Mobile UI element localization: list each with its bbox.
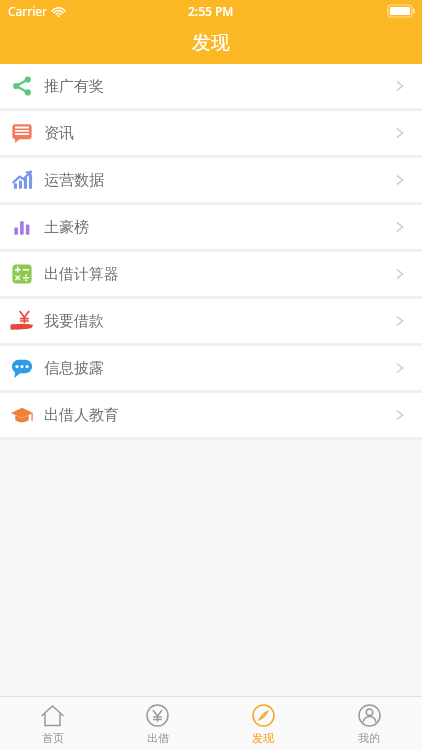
staticText: 发现 [192,31,230,55]
staticText: 出借计算器 [44,265,119,284]
button[interactable]: 出借人教育 [0,393,422,437]
staticText: 土豪榜 [44,218,89,237]
staticText: 首页 [42,731,64,745]
button[interactable]: 推广有奖 [0,64,422,108]
button[interactable]: 出借 [105,697,210,750]
button[interactable]: 运营数据 [0,158,422,202]
staticText: 推广有奖 [44,77,104,96]
staticText: 发现 [252,731,274,745]
button[interactable]: 我要借款 [0,299,422,343]
staticText: 我的 [358,731,380,745]
staticText: 资讯 [44,124,74,143]
staticText: 我要借款 [44,312,104,331]
staticText: 2:55 PM [188,3,234,19]
staticText: 信息披露 [44,359,104,378]
button[interactable]: 发现 [210,697,316,750]
button[interactable]: 资讯 [0,111,422,155]
staticText: 运营数据 [44,171,104,190]
staticText: 出借人教育 [44,406,119,425]
button[interactable]: 首页 [0,697,105,750]
staticText: 出借 [147,731,169,745]
button[interactable]: 土豪榜 [0,205,422,249]
staticText: Carrier [8,3,48,19]
button[interactable]: 出借计算器 [0,252,422,296]
button[interactable]: 信息披露 [0,346,422,390]
button[interactable]: 我的 [316,697,422,750]
